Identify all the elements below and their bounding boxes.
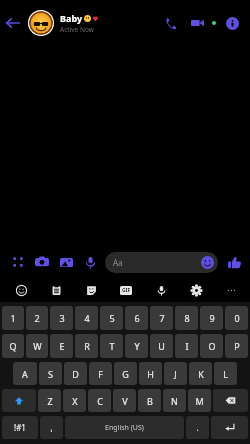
staticText: 1: [10, 312, 16, 324]
button[interactable]: Q: [2, 334, 24, 358]
staticText: X: [72, 395, 78, 407]
button[interactable]: Enter: [211, 416, 248, 439]
button[interactable]: O: [200, 334, 223, 358]
staticText: J: [174, 368, 177, 380]
button[interactable]: 4: [75, 306, 98, 330]
button[interactable]: .: [186, 416, 209, 439]
staticText: L: [223, 368, 228, 380]
button[interactable]: !#1: [2, 416, 38, 439]
button[interactable]: Voice call: [156, 9, 184, 37]
button[interactable]: L: [214, 362, 237, 385]
staticText: English (US): [105, 423, 144, 433]
button[interactable]: I: [175, 334, 198, 358]
button[interactable]: J: [164, 362, 187, 385]
button[interactable]: More options: [9, 253, 27, 271]
button[interactable]: Z: [38, 389, 61, 412]
button[interactable]: Send like: [223, 251, 245, 273]
button[interactable]: U: [150, 334, 173, 358]
button[interactable]: Video call: [184, 9, 212, 37]
button[interactable]: Profile picture: [29, 11, 53, 35]
button[interactable]: Back: [0, 10, 26, 36]
button[interactable]: B: [138, 389, 161, 412]
staticText: 4: [84, 312, 90, 324]
button[interactable]: M: [188, 389, 211, 412]
staticText: !#1: [14, 422, 26, 433]
button[interactable]: 2: [26, 306, 48, 330]
button[interactable]: P: [225, 334, 248, 358]
button[interactable]: 5: [100, 306, 123, 330]
button[interactable]: N: [163, 389, 186, 412]
staticText: GIF: [122, 287, 131, 294]
button[interactable]: R: [75, 334, 98, 358]
button[interactable]: 3: [50, 306, 73, 330]
button[interactable]: Emoji keyboard: [12, 281, 30, 299]
button[interactable]: E: [50, 334, 73, 358]
staticText: ,: [50, 422, 53, 433]
button[interactable]: 7: [150, 306, 173, 330]
staticText: O: [208, 340, 216, 352]
button[interactable]: C: [88, 389, 111, 412]
staticText: S: [48, 368, 53, 380]
staticText: Baby: [60, 12, 83, 24]
button[interactable]: Settings: [187, 281, 205, 299]
button[interactable]: A: [13, 362, 37, 385]
staticText: .: [196, 422, 199, 433]
button[interactable]: ,: [40, 416, 63, 439]
button[interactable]: 8: [175, 306, 198, 330]
staticText: Z: [47, 395, 53, 407]
button[interactable]: V: [113, 389, 136, 412]
button[interactable]: D: [64, 362, 87, 385]
button[interactable]: Emoji: [200, 255, 215, 270]
staticText: I: [185, 340, 189, 352]
button[interactable]: 0: [225, 306, 248, 330]
button[interactable]: Gallery: [57, 253, 75, 271]
staticText: A: [22, 368, 28, 380]
button[interactable]: Y: [125, 334, 148, 358]
staticText: B: [147, 395, 153, 407]
staticText: T: [109, 340, 115, 352]
button[interactable]: More: [222, 281, 240, 299]
button[interactable]: F: [89, 362, 112, 385]
button[interactable]: X: [63, 389, 86, 412]
button[interactable]: Backspace: [213, 389, 248, 412]
button[interactable]: Baby: [60, 12, 156, 34]
staticText: 7: [159, 312, 165, 324]
button[interactable]: K: [189, 362, 212, 385]
staticText: K: [198, 368, 204, 380]
button[interactable]: Camera: [33, 253, 51, 271]
button[interactable]: Aa: [105, 252, 218, 273]
staticText: Q: [9, 340, 17, 352]
staticText: Y: [134, 340, 140, 352]
staticText: G: [122, 368, 129, 380]
button[interactable]: Shift: [2, 389, 36, 412]
staticText: 0: [234, 312, 240, 324]
staticText: H: [147, 368, 154, 380]
button[interactable]: 6: [125, 306, 148, 330]
staticText: N: [171, 395, 178, 407]
button[interactable]: English (US): [65, 416, 184, 439]
button[interactable]: G: [114, 362, 137, 385]
button[interactable]: 1: [2, 306, 24, 330]
staticText: V: [122, 395, 128, 407]
button[interactable]: Voice input: [152, 281, 170, 299]
staticText: 9: [209, 312, 215, 324]
button[interactable]: S: [39, 362, 62, 385]
staticText: C: [97, 395, 103, 407]
button[interactable]: GIF: [117, 281, 135, 299]
button[interactable]: 9: [200, 306, 223, 330]
button[interactable]: W: [26, 334, 48, 358]
staticText: D: [72, 368, 79, 380]
staticText: E: [59, 340, 65, 352]
staticText: U: [158, 340, 165, 352]
button[interactable]: Stickers: [82, 281, 100, 299]
staticText: Aa: [113, 257, 123, 268]
staticText: 8: [184, 312, 190, 324]
button[interactable]: Clipboard: [47, 281, 65, 299]
button[interactable]: Conversation information: [219, 10, 245, 36]
staticText: F: [98, 368, 103, 380]
staticText: M: [195, 395, 204, 407]
button[interactable]: H: [139, 362, 162, 385]
staticText: R: [84, 340, 90, 352]
button[interactable]: T: [100, 334, 123, 358]
button[interactable]: Voice message: [81, 253, 99, 271]
